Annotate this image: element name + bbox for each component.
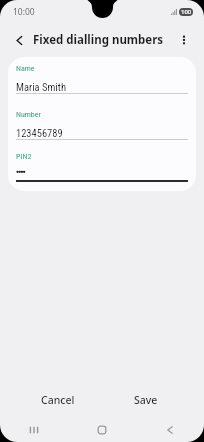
staticText: Cancel [41,393,75,407]
staticText: 123456789 [16,127,63,139]
button[interactable]: Recent apps [0,419,68,441]
button[interactable]: Save [102,385,190,415]
staticText: PIN2 [16,152,32,161]
staticText: Maria Smith [16,81,66,93]
staticText: 100 [181,8,192,16]
staticText: Save [134,393,158,407]
button[interactable]: Cancel [14,385,102,415]
button[interactable]: Home [68,419,136,441]
staticText: Fixed dialling numbers [33,32,164,48]
button[interactable]: More options [170,26,198,54]
button[interactable]: Back [136,419,204,441]
staticText: Number [16,110,41,119]
button[interactable]: Navigate up [5,26,33,54]
staticText: 10:00 [13,6,35,18]
staticText: Name [16,64,35,73]
